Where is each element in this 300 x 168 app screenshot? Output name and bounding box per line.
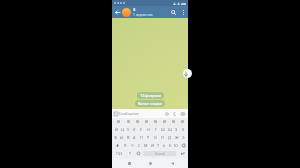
button[interactable]: Shift — [113, 141, 122, 149]
button[interactable]: Д — [166, 133, 173, 141]
staticText: З — [175, 127, 178, 132]
button[interactable]: З — [173, 125, 180, 133]
button[interactable]: Н — [145, 125, 152, 133]
staticText: К — [133, 127, 136, 132]
button[interactable]: Search — [168, 7, 179, 18]
button[interactable]: Е — [138, 125, 145, 133]
button[interactable]: Space — [143, 151, 176, 156]
staticText: Ж — [175, 135, 179, 140]
button[interactable]: Back — [167, 158, 177, 168]
staticText: Русский — [155, 152, 165, 156]
button[interactable]: Keyboard tool 1 — [123, 118, 133, 125]
staticText: О — [154, 135, 157, 140]
button[interactable]: М — [143, 141, 149, 149]
button[interactable]: Keyboard tool 2 — [133, 118, 142, 125]
button[interactable]: Scroll to bottom — [183, 69, 192, 78]
button[interactable]: К — [131, 125, 138, 133]
button[interactable]: Emoji — [134, 149, 142, 158]
button[interactable]: В — [125, 133, 131, 141]
button[interactable]: Keyboard tool 3 — [142, 118, 151, 125]
button[interactable]: Ц — [119, 125, 125, 133]
button[interactable]: Attach file — [171, 110, 179, 118]
button[interactable]: И — [149, 141, 155, 149]
staticText: Ф — [114, 135, 118, 140]
staticText: Н — [147, 127, 150, 132]
staticText: Канал создан — [138, 101, 162, 106]
button[interactable]: More options — [179, 8, 188, 17]
staticText: Д — [168, 135, 171, 140]
button[interactable]: З — [133, 7, 168, 17]
button[interactable]: Я — [122, 141, 129, 149]
button[interactable]: Profile photo — [122, 8, 131, 17]
button[interactable]: Й — [113, 125, 119, 133]
button[interactable]: Р — [145, 133, 152, 141]
button[interactable]: Л — [159, 133, 166, 141]
button[interactable]: Ч — [129, 141, 136, 149]
staticText: Ш — [161, 127, 165, 132]
staticText: В — [127, 135, 130, 140]
button[interactable]: Sticker — [126, 149, 134, 158]
button[interactable]: О — [152, 133, 159, 141]
button[interactable]: С — [136, 141, 143, 149]
button[interactable]: Keyboard tool 4 — [151, 118, 160, 125]
button[interactable]: Б — [167, 141, 173, 149]
button[interactable]: Keyboard tool 7 — [178, 118, 187, 125]
button[interactable]: Notifications — [163, 110, 171, 118]
button[interactable]: Symbols — [113, 149, 126, 158]
button[interactable]: П — [138, 133, 145, 141]
button[interactable]: Ь — [161, 141, 167, 149]
button[interactable]: Ш — [159, 125, 166, 133]
staticText: Б — [169, 143, 172, 148]
staticText: Ч — [131, 143, 134, 148]
staticText: М — [144, 143, 148, 148]
staticText: Я — [124, 143, 127, 148]
button[interactable]: Г — [152, 125, 159, 133]
button[interactable]: Home — [145, 158, 155, 168]
button[interactable]: Recents — [124, 158, 134, 168]
button[interactable]: Ж — [173, 133, 180, 141]
button[interactable]: Ф — [113, 133, 119, 141]
button[interactable]: Щ — [166, 125, 173, 133]
button[interactable]: Backspace — [179, 141, 187, 149]
staticText: А — [133, 135, 136, 140]
staticText: Х — [182, 127, 185, 132]
staticText: П — [140, 135, 143, 140]
staticText: 1 подписчик — [133, 13, 153, 17]
staticText: Л — [161, 135, 164, 140]
button[interactable]: Camera — [179, 110, 187, 118]
button[interactable]: У — [125, 125, 131, 133]
staticText: У — [127, 127, 130, 132]
button[interactable]: Х — [180, 125, 187, 133]
staticText: З — [133, 7, 136, 13]
button[interactable]: Keyboard tool 5 — [160, 118, 169, 125]
staticText: Ц — [121, 127, 124, 132]
staticText: Г — [155, 127, 157, 132]
staticText: Ь — [163, 143, 166, 148]
button[interactable]: Т — [155, 141, 161, 149]
staticText: Ы — [120, 135, 124, 140]
staticText: С — [138, 143, 141, 148]
button[interactable]: Keyboard tool 6 — [169, 118, 178, 125]
staticText: Р — [147, 135, 150, 140]
staticText: Й — [115, 127, 118, 132]
button[interactable]: Канал создан — [138, 101, 162, 106]
staticText: T — [129, 151, 131, 156]
staticText: Щ — [168, 127, 172, 132]
staticText: Е — [140, 127, 143, 132]
staticText: Сообщение — [119, 111, 140, 116]
button[interactable]: Back — [112, 7, 122, 17]
staticText: 14 февраля — [140, 93, 161, 98]
staticText: ?123 — [116, 152, 123, 156]
button[interactable]: 14 февраля — [140, 93, 161, 98]
staticText: Т — [157, 143, 160, 148]
button[interactable]: Э — [180, 133, 187, 141]
button[interactable]: Ю — [173, 141, 179, 149]
button[interactable]: Ы — [119, 133, 125, 141]
button[interactable]: Keyboard tool 0 — [113, 118, 123, 125]
staticText: И — [151, 143, 154, 148]
staticText: Ю — [174, 143, 178, 148]
button[interactable]: А — [131, 133, 138, 141]
button[interactable]: Enter — [177, 149, 187, 158]
staticText: Э — [182, 135, 185, 140]
button[interactable]: Сообщение — [119, 111, 163, 116]
